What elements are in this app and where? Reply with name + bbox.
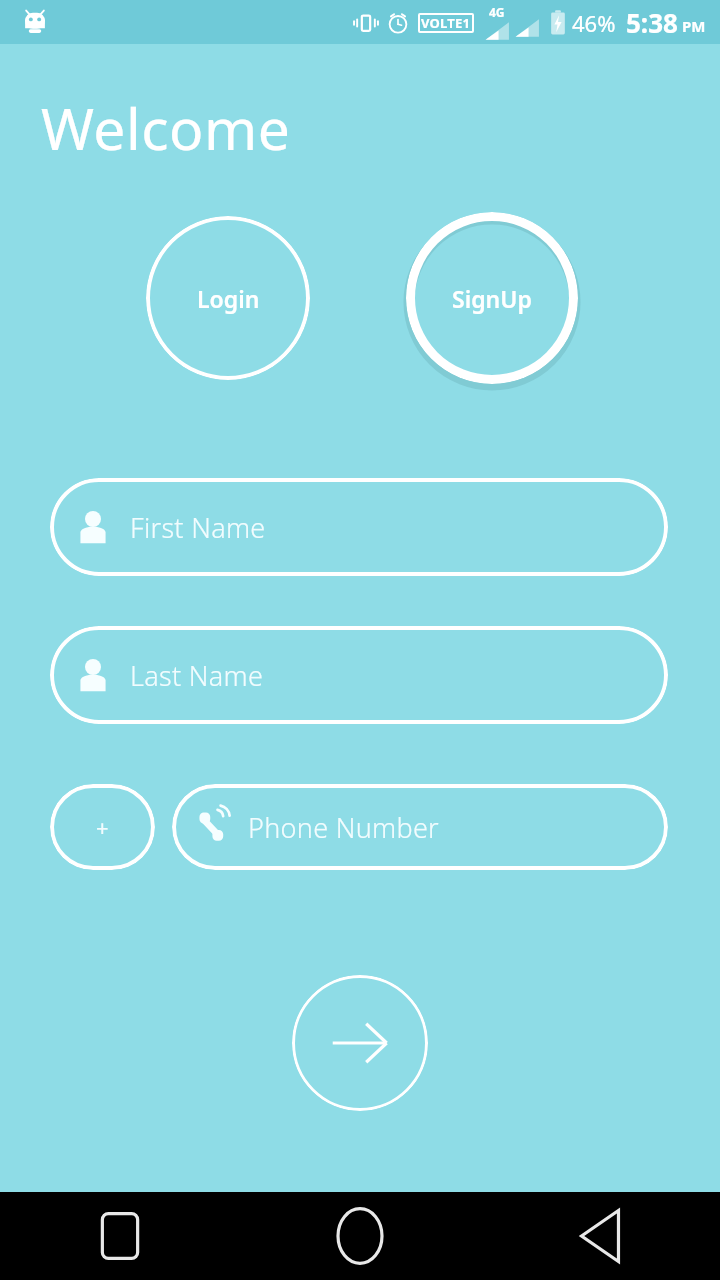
staticText: VOLTE1 [421,14,471,32]
staticText: Phone Number [248,809,440,846]
button[interactable]: Next [292,975,428,1111]
button[interactable]: Recents [0,1192,240,1280]
staticText: First Name [130,509,266,546]
button[interactable]: First Name [50,478,668,576]
staticText: Login [197,283,260,314]
staticText: Last Name [130,657,264,694]
button[interactable]: SignUp [406,212,578,384]
staticText: 46% [572,8,616,38]
staticText: 5:38 [626,5,678,40]
staticText: 4G [489,4,505,20]
staticText: Welcome [41,89,291,167]
button[interactable]: Add country code [50,784,155,870]
button[interactable]: Back [480,1192,720,1280]
button[interactable]: Phone Number [172,784,668,870]
button[interactable]: Last Name [50,626,668,724]
staticText: PM [682,16,706,36]
staticText: SignUp [452,283,532,314]
button[interactable]: Home [240,1192,480,1280]
button[interactable]: Login [146,216,310,380]
staticText: + [96,812,109,842]
